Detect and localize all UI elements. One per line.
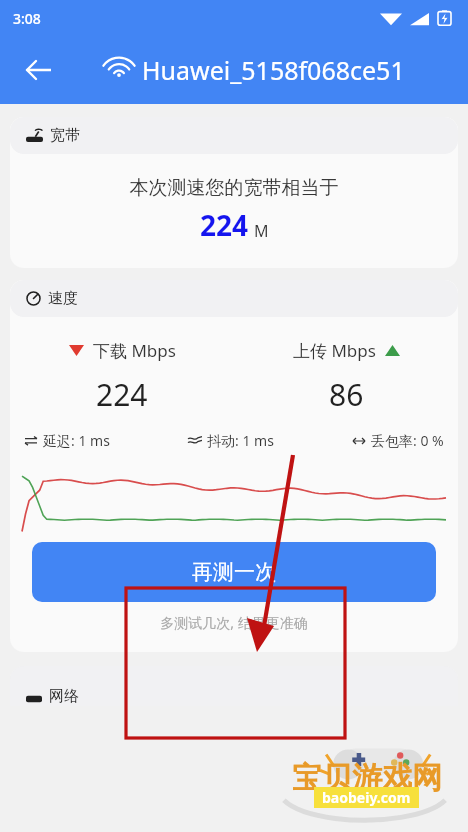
button[interactable]: 网络 [10, 666, 458, 706]
staticText: 再测一次 [192, 559, 276, 585]
staticText: 网络 [49, 687, 79, 706]
staticText: 延迟: 1 ms [43, 431, 110, 450]
button[interactable]: 宽带 [10, 117, 458, 268]
staticText: 多测试几次, 结果更准确 [10, 613, 458, 632]
staticText: 抖动: 1 ms [207, 431, 274, 450]
staticText: 下载 Mbps [93, 339, 176, 362]
staticText: 本次测速您的宽带相当于 [10, 176, 458, 200]
staticText: M [254, 220, 269, 242]
staticText: Huawei_5158f068ce51 [142, 53, 405, 87]
staticText: 224 [96, 374, 148, 415]
button[interactable]: Back [14, 46, 62, 94]
button[interactable]: 再测一次 [32, 542, 436, 602]
staticText: 上传 Mbps [293, 339, 376, 362]
staticText: baobeiy.com [322, 788, 411, 807]
staticText: 速度 [48, 289, 78, 308]
staticText: 丢包率: 0 % [371, 431, 444, 450]
staticText: 224 [200, 206, 249, 244]
staticText: 宽带 [50, 126, 80, 145]
staticText: 86 [329, 374, 364, 415]
staticText: 宝贝游戏网 [292, 759, 442, 797]
staticText: 3:08 [13, 9, 41, 28]
